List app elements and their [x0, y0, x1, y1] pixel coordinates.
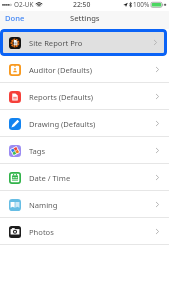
staticText: 100% — [133, 0, 150, 9]
staticText: Date / Time — [29, 173, 71, 183]
other: Site Report Pro — [9, 37, 21, 49]
staticText: Tags — [29, 146, 46, 156]
other: Auditor — [9, 64, 21, 76]
staticText: Site Report Pro — [29, 38, 83, 48]
staticText: O2-UK — [14, 0, 34, 9]
staticText: Photos — [29, 227, 54, 237]
other: Tags — [9, 145, 21, 157]
staticText: Reports (Defaults) — [29, 92, 94, 102]
staticText: Drawing (Defaults) — [29, 119, 96, 129]
button[interactable]: Reports — [0, 83, 169, 110]
button[interactable]: Naming — [0, 191, 169, 218]
staticText: Done — [5, 13, 25, 23]
other: Reports — [9, 91, 21, 103]
staticText: Auditor (Defaults) — [29, 65, 92, 75]
button[interactable]: Tags — [0, 137, 169, 164]
other: Drawing — [9, 118, 21, 130]
button[interactable]: Date and time — [0, 164, 169, 191]
other: Date and time — [9, 172, 21, 184]
staticText: 22:50 — [73, 0, 91, 9]
button[interactable]: Auditor — [0, 56, 169, 83]
button[interactable]: Photos — [0, 218, 169, 245]
button[interactable]: Site Report Pro — [0, 29, 167, 56]
button[interactable]: Done — [5, 13, 25, 23]
staticText: Naming — [29, 200, 58, 210]
staticText: Settings — [70, 13, 100, 23]
other: Naming — [9, 199, 21, 211]
button[interactable]: Drawing — [0, 110, 169, 137]
other: Photos — [9, 226, 21, 238]
